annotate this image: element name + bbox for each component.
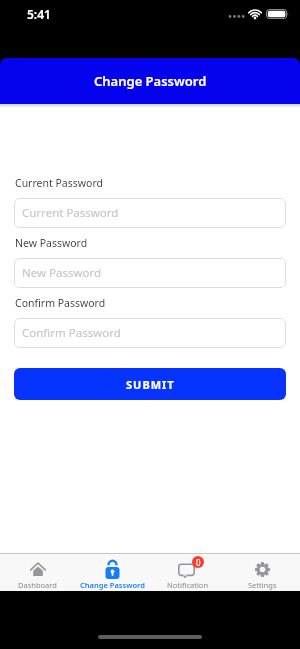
- button[interactable]: 0: [150, 554, 225, 591]
- staticText: Confirm Password: [15, 296, 106, 310]
- staticText: Change Password: [80, 580, 145, 590]
- staticText: Change Password: [94, 72, 207, 90]
- button[interactable]: SUBMIT: [14, 368, 286, 400]
- staticText: Confirm Password: [22, 325, 121, 341]
- button[interactable]: Dashboard: [0, 554, 75, 591]
- staticText: 5:41: [27, 6, 51, 22]
- staticText: New Password: [22, 265, 102, 281]
- button[interactable]: New Password: [14, 258, 286, 288]
- button[interactable]: Change Password: [75, 554, 150, 591]
- staticText: SUBMIT: [126, 377, 175, 392]
- staticText: Current Password: [15, 176, 104, 190]
- button[interactable]: Settings: [225, 554, 300, 591]
- staticText: Notification: [167, 580, 209, 590]
- button[interactable]: Current Password: [14, 198, 286, 228]
- staticText: Current Password: [22, 205, 119, 221]
- staticText: Dashboard: [18, 580, 57, 590]
- staticText: New Password: [15, 236, 88, 250]
- staticText: Settings: [248, 580, 277, 590]
- button[interactable]: Confirm Password: [14, 318, 286, 348]
- staticText: 0: [196, 557, 201, 568]
